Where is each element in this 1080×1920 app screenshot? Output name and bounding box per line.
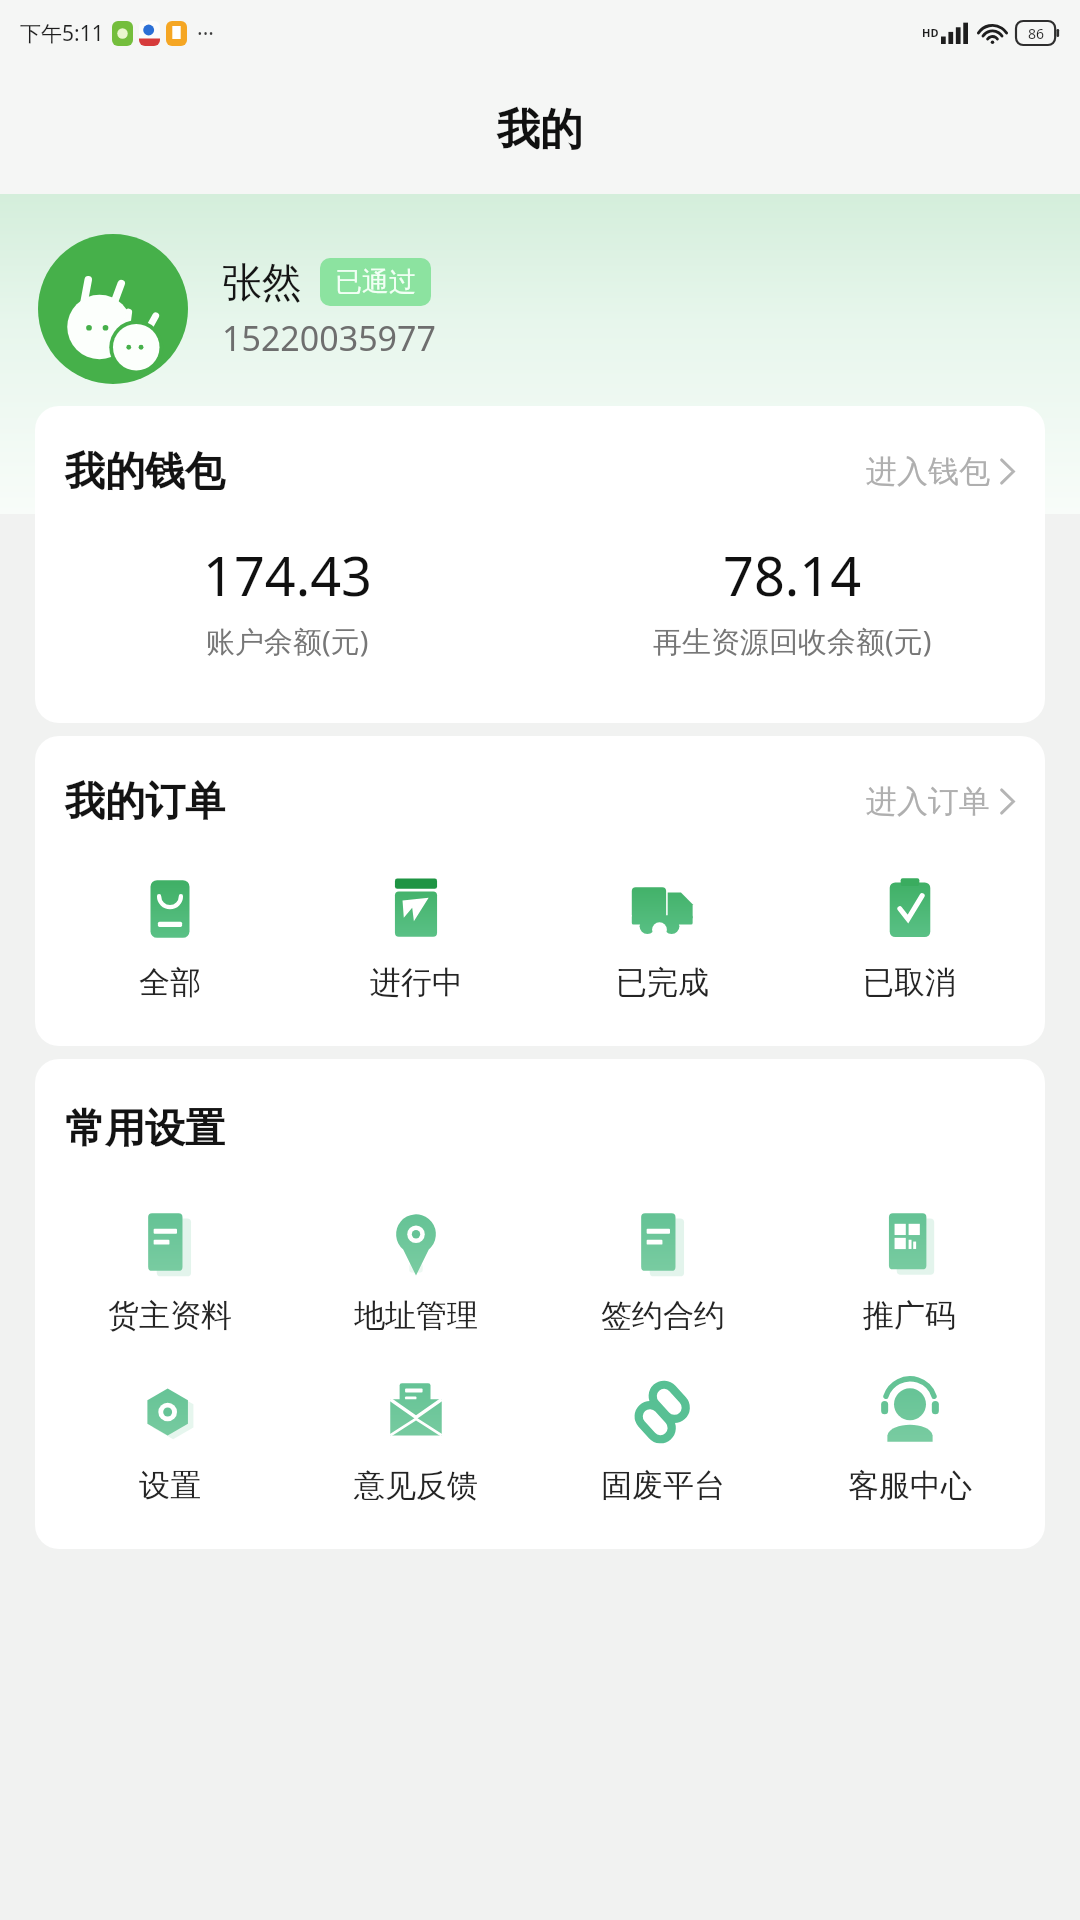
staticText: 进行中 xyxy=(370,963,463,1002)
staticText: 78.14 xyxy=(723,538,862,612)
staticText: 下午5:11 xyxy=(20,19,104,48)
staticText: 已完成 xyxy=(616,963,709,1002)
button[interactable]: 进入钱包 xyxy=(861,447,1021,496)
staticText: 我的订单 xyxy=(65,776,225,826)
staticText: 签约合约 xyxy=(601,1296,725,1335)
button[interactable]: 174.43 xyxy=(35,538,540,661)
staticText: 意见反馈 xyxy=(354,1466,478,1505)
button[interactable]: 意见反馈 xyxy=(293,1369,539,1509)
staticText: 15220035977 xyxy=(222,315,436,361)
button[interactable]: 货主资料 xyxy=(47,1199,293,1339)
button[interactable]: 推广码 xyxy=(786,1199,1033,1339)
staticText: 设置 xyxy=(139,1466,201,1505)
other: 进行中 xyxy=(377,870,455,948)
other: 已完成 xyxy=(624,870,702,948)
staticText: 客服中心 xyxy=(848,1466,972,1505)
staticText: 张然 xyxy=(222,257,302,307)
other: 设置 xyxy=(131,1373,209,1451)
staticText: 地址管理 xyxy=(354,1296,478,1335)
other: 已取消 xyxy=(871,870,949,948)
other: 推广码 xyxy=(871,1203,949,1281)
other: 意见反馈 xyxy=(377,1373,455,1451)
button[interactable]: 张然 xyxy=(38,234,1042,384)
staticText: 已通过 xyxy=(335,265,416,299)
other: 签约合约 xyxy=(624,1203,702,1281)
other: 地址管理 xyxy=(377,1203,455,1281)
staticText: 进入订单 xyxy=(866,782,990,821)
staticText: 全部 xyxy=(139,963,201,1002)
staticText: 货主资料 xyxy=(108,1296,232,1335)
staticText: 账户余额(元) xyxy=(206,621,369,661)
staticText: HD xyxy=(922,25,939,40)
staticText: 再生资源回收余额(元) xyxy=(653,621,932,661)
staticText: 我的钱包 xyxy=(65,446,225,496)
staticText: ··· xyxy=(197,19,214,48)
staticText: 固废平台 xyxy=(601,1466,725,1505)
staticText: 174.43 xyxy=(203,538,372,612)
button[interactable]: 已完成 xyxy=(539,866,786,1006)
staticText: 已取消 xyxy=(863,963,956,1002)
button[interactable]: 固废平台 xyxy=(539,1369,786,1509)
staticText: 常用设置 xyxy=(65,1103,225,1153)
staticText: 进入钱包 xyxy=(866,452,990,491)
staticText: 86 xyxy=(1028,24,1045,43)
button[interactable]: 全部 xyxy=(47,866,293,1006)
button[interactable]: 地址管理 xyxy=(293,1199,539,1339)
button[interactable]: 已取消 xyxy=(786,866,1033,1006)
button[interactable]: 设置 xyxy=(47,1369,293,1509)
button[interactable]: 签约合约 xyxy=(539,1199,786,1339)
button[interactable]: 78.14 xyxy=(540,538,1045,661)
other: 固废平台 xyxy=(624,1373,702,1451)
staticText: 我的 xyxy=(497,103,583,157)
other: 货主资料 xyxy=(131,1203,209,1281)
other: 全部 xyxy=(131,870,209,948)
button[interactable]: 已通过 xyxy=(320,258,431,306)
button[interactable]: 进行中 xyxy=(293,866,539,1006)
staticText: 推广码 xyxy=(863,1296,956,1335)
other: 客服中心 xyxy=(871,1373,949,1451)
button[interactable]: 进入订单 xyxy=(861,777,1021,826)
button[interactable]: 客服中心 xyxy=(786,1369,1033,1509)
